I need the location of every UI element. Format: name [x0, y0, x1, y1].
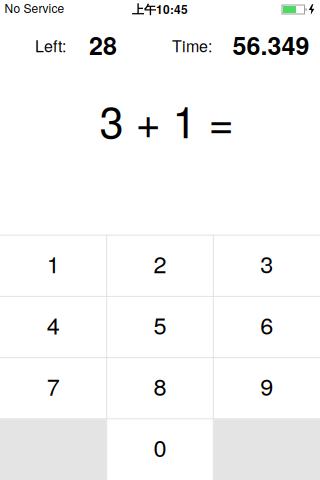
staticText: 3 + 1 =: [99, 88, 233, 150]
staticText: 2: [153, 246, 166, 280]
staticText: 9: [260, 369, 273, 402]
staticText: 0: [153, 430, 166, 464]
staticText: 上午10:45: [132, 0, 188, 18]
staticText: 1: [47, 246, 60, 280]
staticText: 6: [260, 308, 273, 341]
staticText: 3: [260, 246, 273, 280]
staticText: 28: [89, 27, 117, 63]
staticText: 56.349: [232, 27, 309, 63]
staticText: 7: [47, 369, 60, 402]
staticText: Left:: [35, 34, 66, 57]
staticText: 5: [153, 308, 166, 341]
staticText: 8: [153, 369, 166, 402]
staticText: 4: [47, 308, 60, 341]
staticText: Time:: [172, 34, 212, 57]
staticText: No Service: [4, 0, 64, 16]
